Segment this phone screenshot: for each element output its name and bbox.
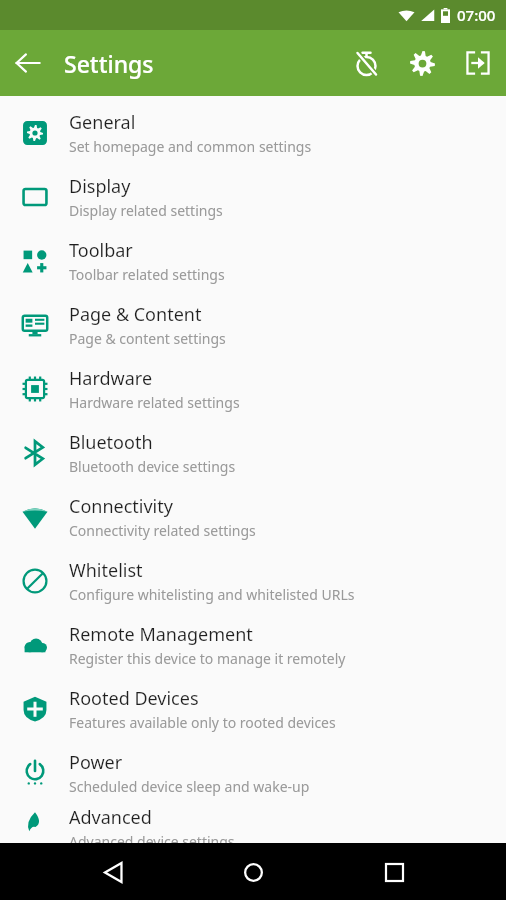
staticText: Connectivity related settings [69, 521, 256, 540]
staticText: Toolbar related settings [69, 265, 225, 284]
staticText: Register this device to manage it remote… [69, 649, 346, 668]
staticText: Power [69, 750, 123, 775]
staticText: Advanced [69, 805, 152, 830]
staticText: Whitelist [69, 558, 143, 583]
button[interactable]: General [0, 101, 506, 165]
staticText: Set homepage and common settings [69, 137, 312, 156]
button[interactable]: Back [85, 844, 141, 900]
button[interactable]: Display [0, 165, 506, 229]
staticText: Hardware [69, 366, 153, 391]
staticText: Settings [64, 48, 154, 79]
button[interactable]: Whitelist [0, 549, 506, 613]
button[interactable]: Connectivity [0, 485, 506, 549]
button[interactable]: Power [0, 741, 506, 805]
staticText: Display related settings [69, 201, 223, 220]
staticText: General [69, 110, 136, 135]
button[interactable]: Rooted Devices [0, 677, 506, 741]
staticText: Page & content settings [69, 329, 226, 348]
button[interactable]: Exit [450, 35, 506, 91]
button[interactable]: Settings [394, 35, 450, 91]
button[interactable]: Timer off [338, 35, 394, 91]
staticText: Display [69, 174, 131, 199]
button[interactable]: Remote Management [0, 613, 506, 677]
button[interactable]: Hardware [0, 357, 506, 421]
staticText: Toolbar [69, 238, 133, 263]
staticText: 07:00 [457, 5, 496, 25]
button[interactable]: Bluetooth [0, 421, 506, 485]
staticText: Connectivity [69, 494, 173, 519]
staticText: Scheduled device sleep and wake-up [69, 777, 310, 796]
staticText: Bluetooth [69, 430, 153, 455]
staticText: Configure whitelisting and whitelisted U… [69, 585, 355, 604]
button[interactable]: Advanced [0, 805, 506, 843]
button[interactable]: Toolbar [0, 229, 506, 293]
staticText: Rooted Devices [69, 686, 199, 711]
button[interactable]: Home [225, 844, 281, 900]
staticText: Hardware related settings [69, 393, 240, 412]
staticText: Remote Management [69, 622, 253, 647]
button[interactable]: Recents [366, 844, 422, 900]
staticText: Bluetooth device settings [69, 457, 236, 476]
staticText: Page & Content [69, 302, 202, 327]
staticText: Features available only to rooted device… [69, 713, 336, 732]
staticText: Advanced device settings [69, 832, 235, 843]
button[interactable]: Page & Content [0, 293, 506, 357]
button[interactable]: Back [0, 35, 56, 91]
